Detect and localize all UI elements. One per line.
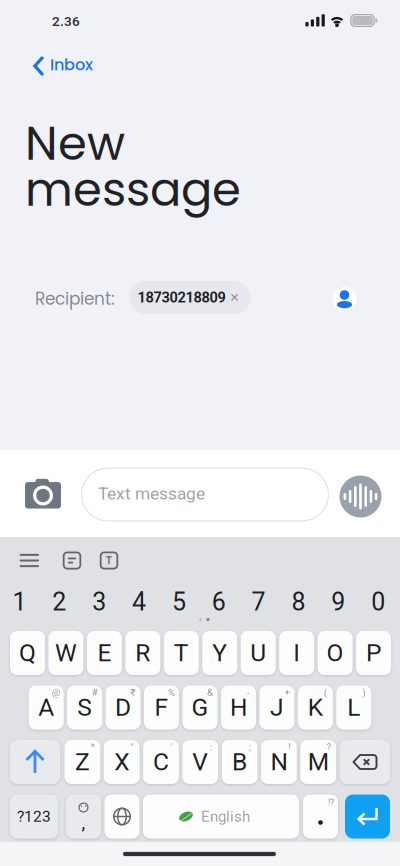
button[interactable]: Switch language (104, 794, 139, 838)
button[interactable]: 9 (320, 582, 356, 622)
staticText: F (155, 693, 169, 722)
button[interactable]: C (143, 740, 179, 784)
staticText: ₹ (131, 687, 136, 698)
staticText: 5 (172, 587, 186, 617)
staticText: U (250, 639, 266, 667)
staticText: T (174, 639, 189, 667)
staticText: !? (328, 797, 334, 808)
button[interactable]: V (182, 740, 218, 784)
button[interactable]: Remove recipient 18730218809 (129, 281, 250, 314)
button[interactable]: Shift (10, 740, 60, 784)
button[interactable]: 1 (1, 582, 37, 622)
staticText: 6 (212, 587, 226, 617)
staticText: T (105, 554, 112, 567)
button[interactable]: H (221, 685, 256, 729)
staticText: - (247, 687, 250, 698)
button[interactable]: Text message (81, 467, 329, 521)
button[interactable]: S (67, 685, 102, 729)
button[interactable]: Menu (15, 548, 43, 572)
staticText: J (270, 693, 284, 722)
staticText: H (230, 693, 247, 722)
staticText: 0 (371, 587, 385, 617)
staticText: 2 (52, 587, 66, 617)
staticText: + (284, 687, 289, 698)
button[interactable]: Contacts (331, 286, 357, 312)
button[interactable]: Camera (25, 478, 61, 511)
button[interactable]: 6 (201, 582, 237, 622)
staticText: C (153, 748, 169, 776)
staticText: D (115, 693, 131, 722)
button[interactable]: X (104, 740, 140, 784)
button[interactable]: J (259, 685, 294, 729)
staticText: Z (75, 748, 90, 776)
button[interactable]: B (222, 740, 257, 784)
staticText: S (77, 693, 92, 722)
button[interactable]: G (182, 685, 217, 729)
button[interactable]: E (87, 631, 122, 675)
staticText: X (114, 748, 129, 776)
button[interactable]: O (318, 631, 353, 675)
staticText: L (347, 693, 360, 722)
button[interactable]: Z (64, 740, 100, 784)
button[interactable]: F (144, 685, 179, 729)
staticText: 8 (291, 587, 305, 617)
button[interactable]: 0 (360, 582, 396, 622)
button[interactable]: Text editing (95, 548, 123, 572)
staticText: Recipient: (35, 287, 115, 311)
button[interactable]: Clipboard (58, 548, 86, 572)
staticText: N (270, 748, 287, 776)
button[interactable]: 2 (41, 582, 77, 622)
staticText: R (135, 639, 150, 667)
staticText: M (308, 748, 329, 776)
button[interactable]: P (356, 631, 391, 675)
staticText: ; (249, 741, 251, 752)
staticText: # (92, 687, 98, 698)
button[interactable]: 3 (81, 582, 117, 622)
staticText: ! (288, 741, 290, 752)
button[interactable]: N (261, 740, 297, 784)
button[interactable]: Space, language English (143, 794, 299, 838)
button[interactable]: L (336, 685, 371, 729)
button[interactable]: Back to Inbox (28, 52, 100, 80)
button[interactable]: Voice input (339, 475, 381, 517)
staticText: New (25, 111, 125, 176)
staticText: V (192, 748, 208, 776)
staticText: 2.36 (52, 14, 80, 29)
button[interactable]: R (125, 631, 160, 675)
staticText: 3 (92, 587, 106, 617)
button[interactable]: 7 (241, 582, 277, 622)
button[interactable]: T (164, 631, 199, 675)
staticText: " (131, 741, 134, 752)
button[interactable]: A (29, 685, 64, 729)
button[interactable]: Comma, long press for emoji (66, 794, 101, 838)
button[interactable]: Backspace (340, 740, 390, 784)
button[interactable]: M (300, 740, 336, 784)
staticText: ? (327, 741, 331, 752)
staticText: , (81, 811, 85, 834)
button[interactable]: D (106, 685, 141, 729)
button[interactable]: Enter (345, 794, 390, 838)
staticText: B (232, 748, 247, 776)
button[interactable]: 4 (121, 582, 157, 622)
staticText: ✕ (229, 290, 239, 304)
button[interactable]: U (241, 631, 276, 675)
button[interactable]: K (298, 685, 333, 729)
staticText: Inbox (50, 53, 93, 76)
button[interactable]: Symbols keyboard (10, 794, 58, 838)
button[interactable]: W (48, 631, 83, 675)
staticText: English (201, 808, 250, 825)
staticText: ' (170, 741, 172, 752)
staticText: ) (362, 687, 365, 698)
button[interactable]: I (279, 631, 314, 675)
button[interactable]: Y (202, 631, 237, 675)
button[interactable]: Q (10, 631, 45, 675)
staticText: W (55, 639, 77, 667)
staticText: ?123 (17, 807, 51, 826)
staticText: message (25, 157, 241, 222)
staticText: Y (212, 639, 227, 667)
staticText: I (293, 639, 300, 667)
button[interactable]: Period (303, 794, 338, 838)
staticText: & (207, 687, 213, 698)
button[interactable]: 8 (280, 582, 316, 622)
button[interactable]: 5 (161, 582, 197, 622)
